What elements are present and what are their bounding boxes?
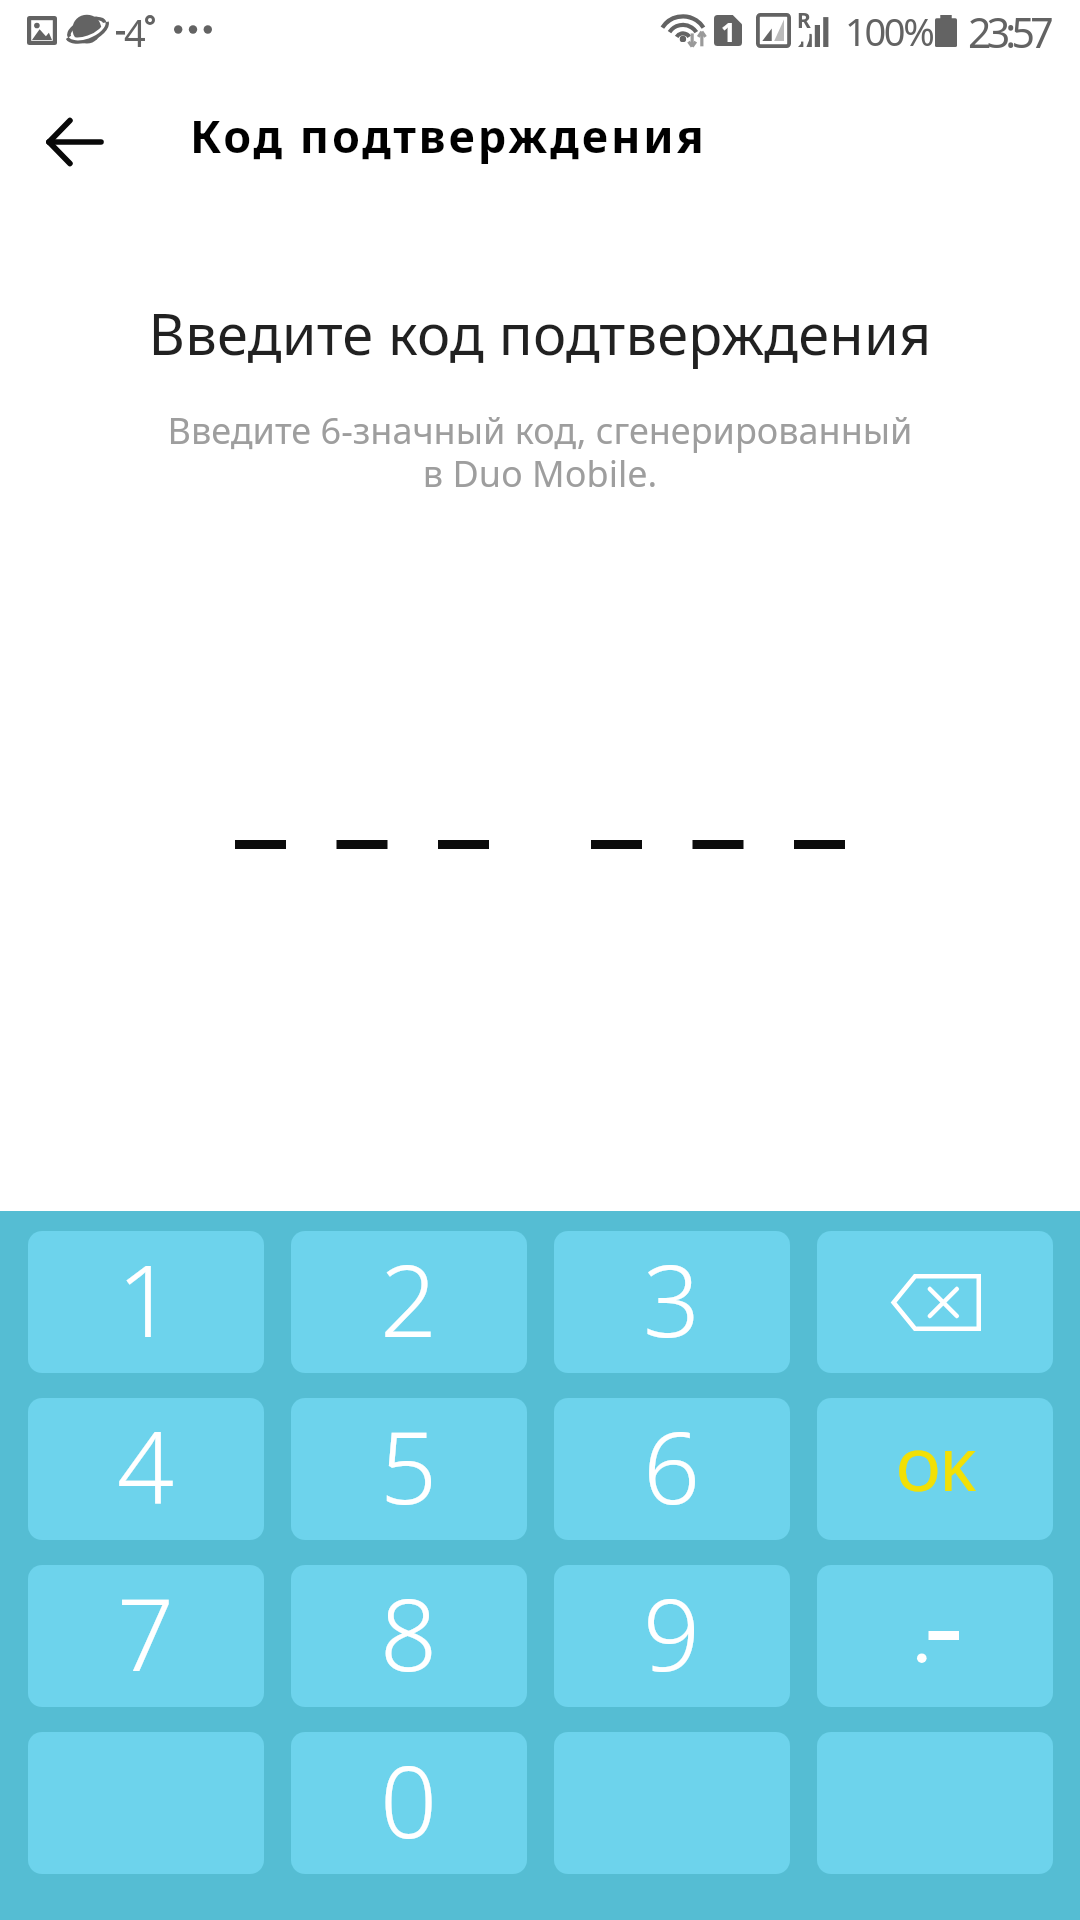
- button[interactable]: 7: [28, 1565, 264, 1707]
- button[interactable]: OK: [817, 1398, 1053, 1540]
- staticText: 23:57: [968, 4, 1049, 60]
- staticText: 3: [643, 1231, 701, 1366]
- button[interactable]: Dot and dash: [817, 1565, 1053, 1707]
- other: Dot and dash: [817, 1565, 1053, 1707]
- staticText: 6: [643, 1398, 701, 1533]
- staticText: OK: [896, 1430, 975, 1508]
- staticText: 8: [380, 1565, 438, 1700]
- staticText: R: [797, 6, 811, 35]
- staticText: 0: [380, 1732, 438, 1867]
- button[interactable]: 2: [291, 1231, 527, 1373]
- staticText: 4: [117, 1398, 175, 1533]
- staticText: 9: [643, 1565, 701, 1700]
- button[interactable]: 9: [554, 1565, 790, 1707]
- button[interactable]: 4: [28, 1398, 264, 1540]
- button[interactable]: Backspace: [817, 1231, 1053, 1373]
- button[interactable]: 6: [554, 1398, 790, 1540]
- staticText: 4: [124, 6, 146, 58]
- staticText: Код подтверждения: [190, 105, 707, 166]
- staticText: 5: [380, 1398, 438, 1533]
- staticText: 1: [117, 1231, 175, 1366]
- button[interactable]: 0: [291, 1732, 527, 1874]
- staticText: 100%: [845, 5, 933, 57]
- button[interactable]: Back: [18, 84, 130, 196]
- button[interactable]: 5: [291, 1398, 527, 1540]
- staticText: 2: [380, 1231, 438, 1366]
- button[interactable]: 3: [554, 1231, 790, 1373]
- other: Backspace: [817, 1231, 1053, 1373]
- button[interactable]: 1: [28, 1231, 264, 1373]
- staticText: 7: [117, 1565, 175, 1700]
- button[interactable]: 8: [291, 1565, 527, 1707]
- staticText: 1: [721, 14, 736, 45]
- staticText: Введите код подтверждения: [0, 295, 1080, 371]
- staticText: Введите 6-значный код, сгенерированный в…: [0, 406, 1080, 498]
